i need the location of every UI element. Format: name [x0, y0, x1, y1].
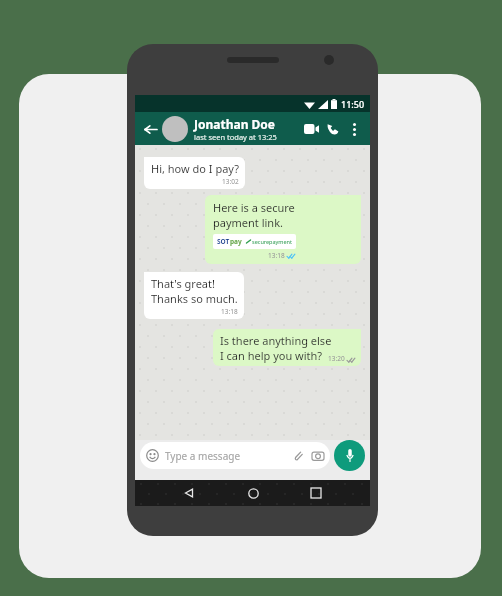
button[interactable]: Type a message: [140, 442, 330, 469]
button[interactable]: Video call: [300, 118, 322, 140]
other: Attach: [292, 450, 304, 462]
staticText: last seen today at 13:25: [194, 132, 277, 142]
other: Camera: [312, 450, 324, 462]
staticText: Here is a secure: [213, 200, 295, 215]
button[interactable]: Call: [322, 118, 344, 140]
staticText: payment link.: [213, 215, 283, 230]
button[interactable]: [162, 116, 188, 142]
staticText: 13:18: [221, 307, 238, 316]
button[interactable]: Recents: [306, 483, 326, 503]
staticText: That's great!: [151, 276, 215, 291]
staticText: 13:18: [268, 251, 285, 260]
staticText: I can help you with?: [220, 348, 323, 363]
button[interactable]: Is there anything else: [213, 329, 361, 366]
staticText: pay: [230, 237, 242, 246]
button[interactable]: Home: [243, 483, 263, 503]
button[interactable]: More options: [344, 119, 364, 139]
staticText: Thanks so much.: [151, 291, 238, 306]
button[interactable]: Here is a secure: [205, 195, 361, 264]
staticText: 13:02: [222, 177, 239, 186]
staticText: SOT: [217, 237, 230, 246]
button[interactable]: Back: [141, 120, 159, 138]
button[interactable]: Back: [179, 483, 199, 503]
staticText: securepayment: [252, 238, 292, 245]
staticText: Jonathan Doe: [194, 116, 276, 132]
staticText: 11:50: [341, 98, 365, 110]
button[interactable]: That's great!: [144, 272, 244, 319]
button[interactable]: Voice message: [334, 440, 365, 471]
staticText: Is there anything else: [220, 333, 332, 348]
staticText: Type a message: [165, 449, 241, 463]
staticText: Hi, how do I pay?: [151, 161, 239, 176]
button[interactable]: SOT: [213, 234, 296, 249]
button[interactable]: Hi, how do I pay?: [144, 157, 245, 189]
staticText: 13:20: [328, 354, 345, 363]
button[interactable]: Jonathan Doe: [194, 116, 300, 142]
